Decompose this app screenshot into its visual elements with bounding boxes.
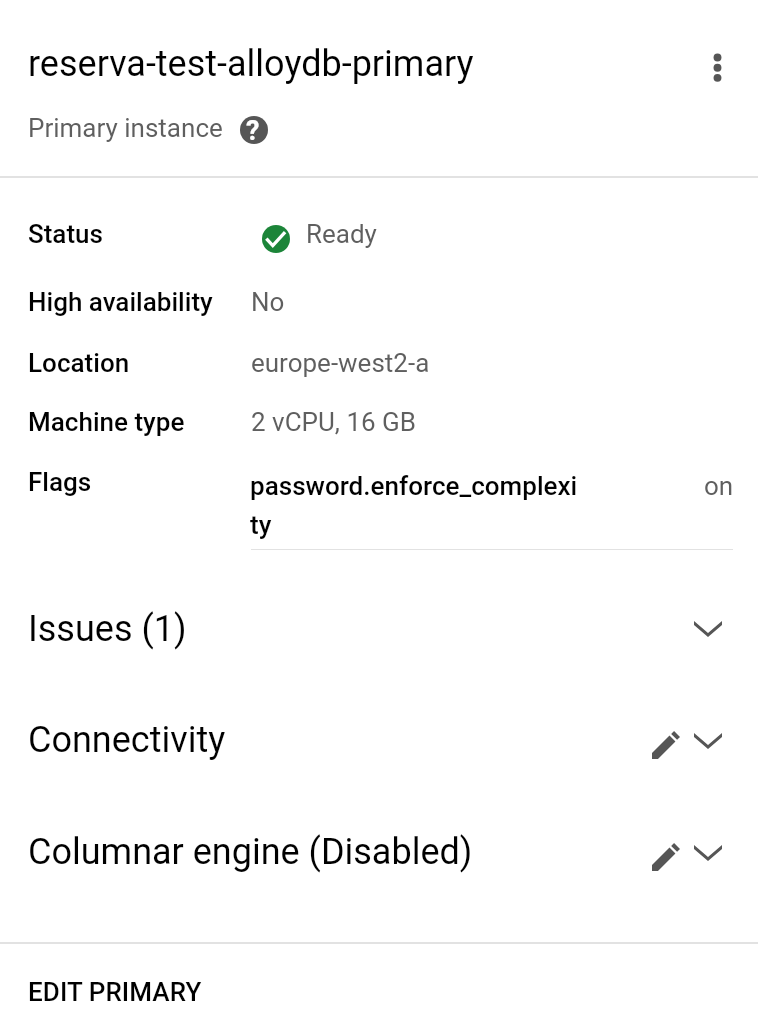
staticText: ? [246, 115, 260, 147]
staticText: High availability [28, 287, 213, 317]
staticText: Location [28, 348, 130, 378]
staticText: Issues (1) [28, 608, 187, 650]
button[interactable]: Edit Connectivity [641, 720, 691, 770]
staticText: EDIT PRIMARY [28, 977, 202, 1007]
button[interactable]: Columnar engine (Disabled) [0, 809, 758, 919]
button[interactable]: Help [231, 107, 276, 152]
button[interactable]: EDIT PRIMARY [0, 944, 758, 1036]
staticText: Status [28, 219, 103, 249]
staticText: reserva-test-alloydb-primary [28, 43, 474, 85]
button[interactable]: Expand Issues (1) [683, 604, 733, 654]
staticText: No [251, 287, 285, 317]
staticText: Connectivity [28, 719, 226, 761]
button[interactable]: Expand Columnar engine (Disabled) [683, 828, 733, 878]
staticText: 2 vCPU, 16 GB [251, 407, 416, 437]
staticText: Machine type [28, 407, 185, 437]
button[interactable]: Connectivity [0, 697, 758, 807]
staticText: on [704, 471, 734, 501]
button[interactable]: Issues (1) [0, 586, 758, 680]
button[interactable]: More options [692, 42, 740, 90]
staticText: Ready [306, 219, 377, 249]
staticText: Primary instance [28, 113, 223, 143]
staticText: password.enforce_complexity [250, 471, 584, 540]
staticText: Flags [28, 467, 92, 497]
button[interactable]: Expand Connectivity [683, 716, 733, 766]
staticText: Columnar engine (Disabled) [28, 831, 473, 873]
staticText: europe-west2-a [251, 348, 430, 378]
button[interactable]: Edit Columnar engine (Disabled) [641, 832, 691, 882]
